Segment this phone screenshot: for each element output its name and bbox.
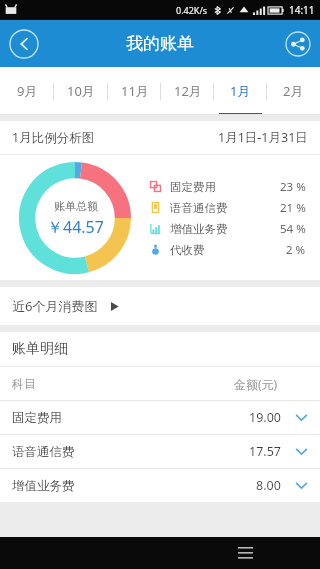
staticText: 9月 (17, 82, 38, 100)
staticText: 14:11 (289, 3, 315, 17)
button[interactable]: 语音通信费 (0, 435, 320, 468)
staticText: 固定费用 (12, 410, 62, 426)
button[interactable]: 近6个月消费图 (0, 287, 320, 325)
staticText: 19.00 (249, 409, 281, 426)
staticText: 1月 (230, 82, 251, 100)
staticText: 科目 (12, 376, 36, 391)
button[interactable]: 9月 (0, 67, 54, 115)
button[interactable]: 1月 (214, 67, 267, 115)
button[interactable]: Menu (230, 538, 260, 568)
button[interactable]: 增值业务费 (0, 469, 320, 502)
staticText: 54 % (280, 221, 306, 237)
staticText: 11月 (121, 82, 149, 100)
staticText: 2 % (286, 242, 306, 258)
staticText: 增值业务费 (170, 222, 228, 236)
button[interactable]: Share (285, 31, 311, 57)
staticText: 21 % (280, 200, 306, 216)
button[interactable]: 10月 (54, 67, 108, 115)
staticText: 2月 (283, 82, 304, 100)
staticText: 语音通信费 (170, 201, 228, 215)
button[interactable]: 代收费 (150, 239, 306, 260)
staticText: 语音通信费 (12, 444, 75, 460)
staticText: ￥44.57 (47, 216, 104, 238)
button[interactable]: 语音通信费 (150, 197, 306, 218)
staticText: 12月 (174, 82, 202, 100)
button[interactable]: 固定费用 (150, 176, 306, 197)
button[interactable]: Back (9, 29, 39, 59)
button[interactable]: 12月 (161, 67, 214, 115)
staticText: 增值业务费 (12, 478, 75, 494)
staticText: 17.57 (249, 443, 281, 460)
staticText: 1月1日-1月31日 (218, 129, 308, 146)
staticText: 8.00 (256, 477, 281, 494)
button[interactable]: 固定费用 (0, 401, 320, 434)
staticText: 代收费 (170, 243, 205, 257)
staticText: 账单总额 (54, 199, 98, 213)
staticText: 10月 (67, 82, 95, 100)
staticText: 账单明细 (12, 340, 68, 358)
staticText: 23 % (280, 179, 306, 195)
staticText: 0.42K/s (176, 4, 208, 16)
button[interactable]: 2月 (267, 67, 320, 115)
button[interactable]: 增值业务费 (150, 218, 306, 239)
staticText: 金额(元) (234, 376, 278, 392)
staticText: 近6个月消费图 (12, 297, 98, 315)
staticText: 固定费用 (170, 180, 216, 194)
button[interactable]: 11月 (108, 67, 161, 115)
staticText: 1月比例分析图 (12, 129, 95, 146)
staticText: 我的账单 (126, 33, 194, 54)
